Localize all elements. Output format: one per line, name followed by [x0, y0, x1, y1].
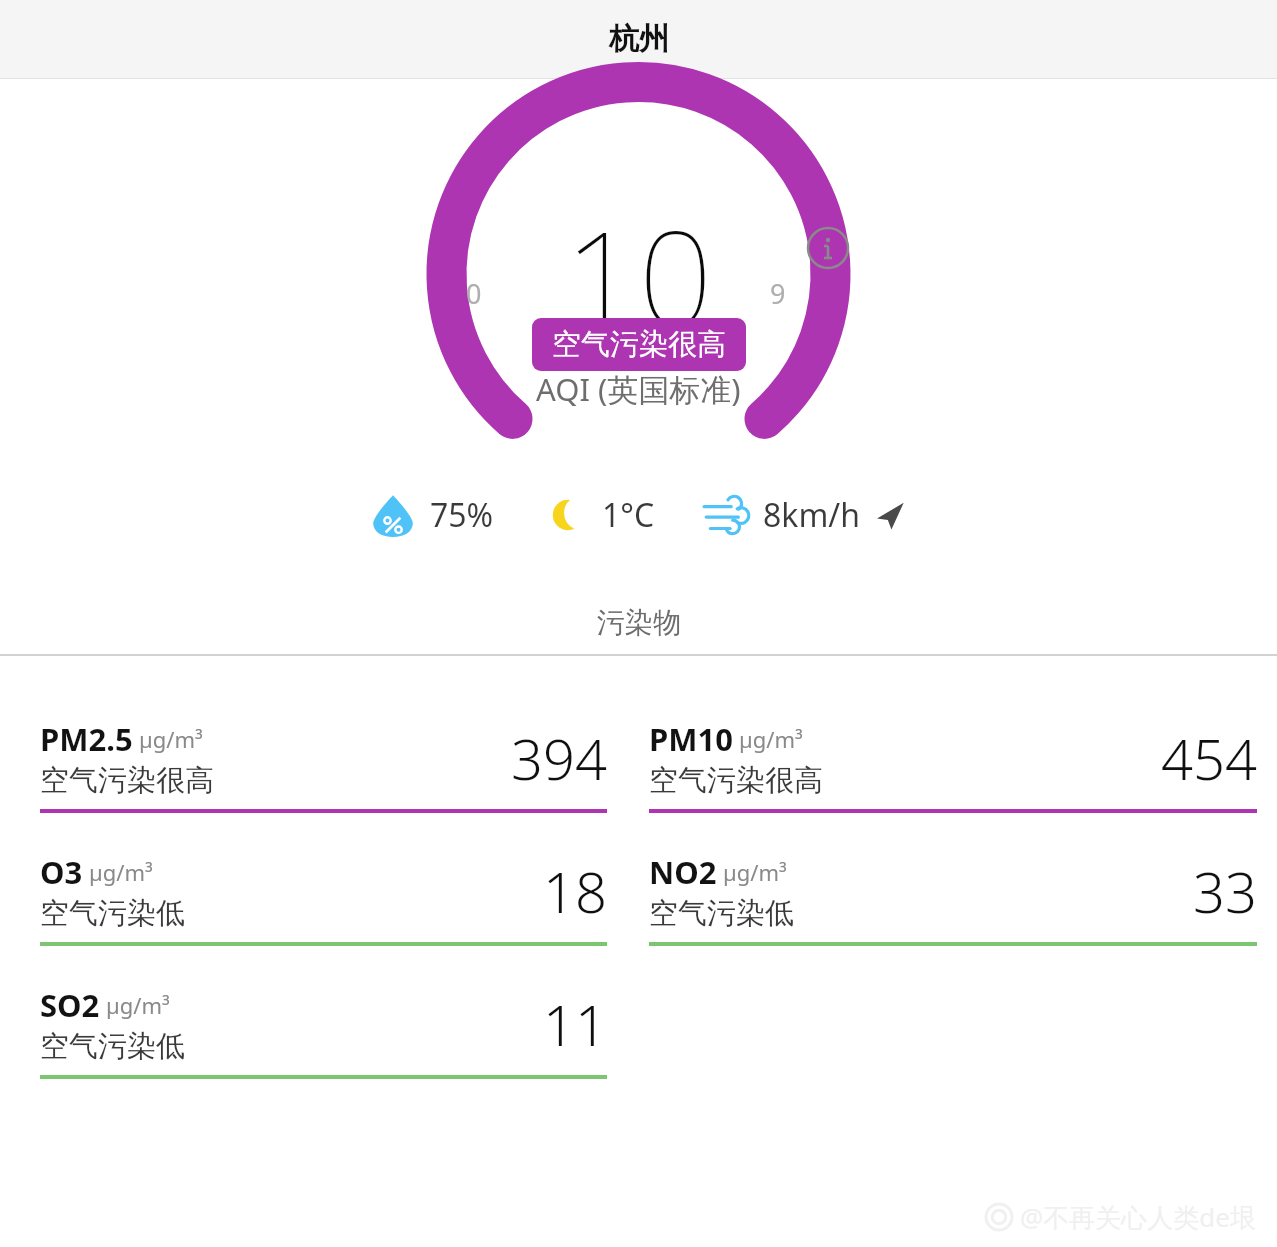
staticText: 杭州 — [609, 20, 669, 58]
staticText: PM10 — [649, 718, 733, 760]
staticText: 1°C — [602, 493, 655, 537]
staticText: µg/m³ — [739, 724, 803, 754]
staticText: O3 — [40, 851, 83, 893]
button[interactable]: 空气污染很高 — [532, 318, 746, 371]
staticText: PM2.5 — [40, 718, 133, 760]
staticText: µg/m³ — [139, 724, 203, 754]
staticText: 0 — [466, 275, 482, 312]
button[interactable]: SO2 — [40, 984, 607, 1079]
other: Wind direction — [872, 497, 908, 533]
staticText: 10 — [564, 187, 713, 364]
staticText: @不再关心人类de垠 — [1020, 1199, 1257, 1235]
staticText: 18 — [543, 853, 607, 929]
staticText: SO2 — [40, 984, 100, 1026]
staticText: NO2 — [649, 851, 717, 893]
staticText: 空气污染低 — [40, 895, 185, 932]
staticText: 空气污染很高 — [649, 762, 823, 799]
staticText: 454 — [1161, 720, 1257, 796]
staticText: 75% — [430, 493, 494, 537]
staticText: AQI (英国标准) — [536, 368, 741, 410]
staticText: 33 — [1193, 853, 1257, 929]
staticText: 8km/h — [763, 493, 860, 537]
staticText: 污染物 — [597, 605, 681, 640]
staticText: µg/m³ — [106, 990, 170, 1020]
staticText: 空气污染低 — [40, 1028, 185, 1065]
staticText: µg/m³ — [723, 857, 787, 887]
staticText: 9 — [770, 275, 786, 312]
staticText: 空气污染很高 — [552, 326, 726, 363]
button[interactable]: O3 — [40, 851, 607, 946]
staticText: 空气污染低 — [649, 895, 794, 932]
button[interactable]: Info — [805, 225, 851, 271]
staticText: 11 — [543, 986, 607, 1062]
staticText: 394 — [511, 720, 607, 796]
button[interactable]: NO2 — [649, 851, 1257, 946]
button[interactable]: PM2.5 — [40, 718, 607, 813]
staticText: 空气污染很高 — [40, 762, 214, 799]
button[interactable]: PM10 — [649, 718, 1257, 813]
staticText: µg/m³ — [89, 857, 153, 887]
